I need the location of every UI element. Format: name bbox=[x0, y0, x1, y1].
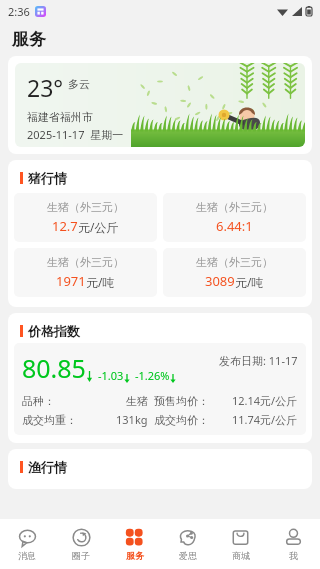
staticText: 2025-11-17 星期一 bbox=[27, 127, 124, 142]
staticText: 6.44:1 bbox=[216, 217, 253, 235]
staticText: 价格指数 bbox=[28, 323, 80, 339]
button[interactable]: 23° bbox=[15, 63, 305, 147]
staticText: 成交均重： bbox=[22, 413, 77, 427]
staticText: 1971 bbox=[56, 272, 86, 290]
staticText: 服务 bbox=[126, 550, 144, 561]
staticText: 元/吨 bbox=[235, 274, 264, 290]
staticText: 11.74元/公斤 bbox=[232, 412, 298, 427]
button[interactable]: 商城 bbox=[214, 519, 267, 569]
staticText: 我 bbox=[289, 550, 298, 561]
staticText: 3089 bbox=[205, 272, 235, 290]
staticText: 成交均价： bbox=[154, 413, 209, 427]
staticText: 品种： bbox=[22, 394, 55, 408]
staticText: 圈子 bbox=[72, 550, 90, 561]
button[interactable]: 消息 bbox=[0, 519, 54, 569]
staticText: 爱思 bbox=[179, 550, 197, 561]
staticText: 23° bbox=[27, 72, 64, 103]
staticText: 福建省福州市 bbox=[27, 110, 93, 124]
staticText: 服务 bbox=[12, 29, 46, 50]
staticText: 80.85 bbox=[22, 351, 86, 385]
staticText: 12.7 bbox=[52, 217, 78, 235]
staticText: 消息 bbox=[18, 550, 36, 561]
staticText: 渔行情 bbox=[28, 459, 67, 475]
staticText: 元/吨 bbox=[86, 274, 115, 290]
button[interactable]: 生猪（外三元） bbox=[163, 248, 306, 297]
staticText: 生猪（外三元） bbox=[47, 200, 124, 214]
button[interactable]: 80.85 bbox=[14, 343, 306, 435]
staticText: 2:36 bbox=[8, 4, 30, 19]
button[interactable]: 生猪（外三元） bbox=[163, 193, 306, 242]
staticText: 发布日期: 11-17 bbox=[219, 353, 298, 368]
staticText: -1.26% bbox=[135, 368, 170, 383]
button[interactable]: 圈子 bbox=[54, 519, 108, 569]
button[interactable]: 服务 bbox=[108, 519, 161, 569]
staticText: 131kg bbox=[116, 412, 148, 427]
staticText: 元/公斤 bbox=[78, 219, 119, 235]
button[interactable]: 生猪（外三元） bbox=[14, 248, 157, 297]
staticText: 商城 bbox=[232, 550, 250, 561]
staticText: 生猪（外三元） bbox=[47, 255, 124, 269]
button[interactable]: 生猪（外三元） bbox=[14, 193, 157, 242]
staticText: 猪行情 bbox=[28, 170, 67, 186]
staticText: -1.03 bbox=[98, 368, 124, 383]
staticText: 12.14元/公斤 bbox=[232, 393, 298, 408]
staticText: 生猪（外三元） bbox=[196, 200, 273, 214]
staticText: 预售均价： bbox=[154, 394, 209, 408]
button[interactable]: 我 bbox=[267, 519, 320, 569]
staticText: 多云 bbox=[68, 77, 90, 91]
button[interactable]: 爱思 bbox=[161, 519, 214, 569]
staticText: 生猪 bbox=[126, 394, 148, 408]
staticText: 生猪（外三元） bbox=[196, 255, 273, 269]
